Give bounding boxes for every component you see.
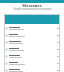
staticText: Simple messaging for everyone <box>13 7 52 10</box>
button[interactable] <box>4 60 60 67</box>
staticText: Messages <box>22 3 42 7</box>
button[interactable] <box>4 32 60 39</box>
button[interactable] <box>4 46 60 53</box>
button[interactable] <box>4 25 60 32</box>
button[interactable] <box>4 67 60 72</box>
button[interactable] <box>4 53 60 60</box>
button[interactable] <box>4 39 60 46</box>
